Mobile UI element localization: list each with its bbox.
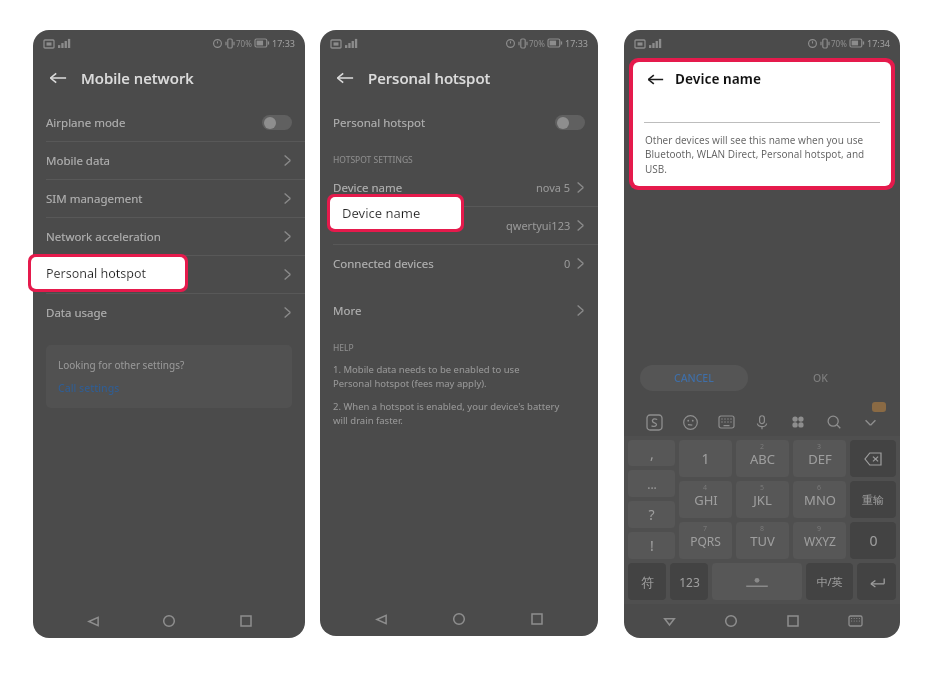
staticText: 5 (760, 483, 765, 493)
staticText: 符 (641, 574, 654, 590)
staticText: OK (813, 371, 828, 385)
button[interactable]: Personal hotspot (33, 256, 305, 293)
button[interactable]: 符 (628, 563, 666, 600)
button[interactable]: 7 (679, 522, 732, 559)
button[interactable]: Personal hotspot (31, 257, 185, 289)
button[interactable]: Recents (520, 602, 554, 636)
button[interactable]: Home (152, 604, 186, 638)
button[interactable]: Mobile data (33, 142, 305, 179)
staticText: 2. When a hotspot is enabled, your devic… (333, 400, 560, 427)
button[interactable]: ... (628, 470, 675, 497)
button[interactable]: Device name (330, 197, 461, 229)
button[interactable]: More tools (786, 410, 810, 434)
staticText: 17:34 (867, 37, 891, 49)
button[interactable]: Password (320, 207, 598, 244)
button[interactable]: , (628, 440, 675, 466)
button[interactable]: Recents (229, 604, 263, 638)
button[interactable]: 5 (736, 481, 789, 518)
staticText: Personal hotspot (368, 68, 491, 88)
button[interactable]: 重输 (850, 481, 896, 518)
button[interactable]: 6 (793, 481, 846, 518)
button[interactable]: Back (47, 67, 69, 89)
staticText: ! (650, 536, 654, 555)
staticText: WXYZ (804, 533, 836, 549)
button[interactable]: Keyboard (838, 604, 872, 638)
button[interactable]: Home (714, 604, 748, 638)
button[interactable]: 1 (679, 440, 732, 477)
staticText: Other devices will see this name when yo… (645, 133, 879, 176)
button[interactable]: Sogou (642, 410, 666, 434)
button[interactable]: Back (33, 56, 305, 100)
button[interactable]: Hide keyboard (858, 410, 882, 434)
button[interactable]: Space (712, 563, 802, 600)
staticText: 3 (817, 442, 822, 452)
staticText: HOTSPOT SETTINGS (333, 154, 413, 166)
staticText: 9 (817, 524, 822, 534)
staticText: Data usage (46, 305, 108, 321)
button[interactable]: Device name (320, 169, 598, 206)
staticText: HELP (333, 342, 354, 354)
button[interactable]: Enter (857, 563, 896, 600)
staticText: 4 (703, 483, 708, 493)
button[interactable]: 2 (736, 440, 789, 477)
staticText: 1. Mobile data needs to be enabled to us… (333, 363, 520, 390)
staticText: DEF (808, 450, 832, 468)
staticText: 70% (529, 38, 545, 49)
button[interactable]: Back (76, 604, 110, 638)
staticText: GHI (694, 491, 718, 509)
button[interactable]: 中/英 (806, 563, 853, 600)
button[interactable]: ! (628, 532, 675, 559)
button[interactable]: Search (822, 410, 846, 434)
staticText: Personal hotspot (333, 115, 426, 131)
staticText: Airplane mode (46, 115, 126, 131)
button[interactable]: Personal hotspot (320, 104, 598, 141)
button[interactable]: Keyboard layout (714, 410, 738, 434)
button[interactable]: 9 (793, 522, 846, 559)
staticText: Connected devices (333, 256, 434, 272)
staticText: Network acceleration (46, 229, 161, 245)
button[interactable]: Toggle (555, 115, 585, 130)
button[interactable]: Back (320, 56, 598, 100)
staticText: 中/英 (816, 574, 843, 589)
button[interactable]: More (320, 292, 598, 329)
button[interactable]: Back (334, 67, 356, 89)
button[interactable]: Toggle (262, 115, 292, 130)
staticText: Looking for other settings? (58, 358, 185, 372)
button[interactable]: Looking for other settings? (46, 345, 292, 408)
staticText: ... (647, 476, 657, 492)
staticText: , (650, 444, 654, 463)
button[interactable]: Delete (850, 440, 896, 477)
button[interactable]: SIM management (33, 180, 305, 217)
button[interactable]: Voice input (750, 410, 774, 434)
staticText: 123 (679, 574, 700, 590)
button[interactable]: Back (652, 604, 686, 638)
staticText: SIM management (46, 191, 143, 207)
staticText: 70% (831, 38, 847, 49)
button[interactable]: CANCEL (640, 365, 748, 391)
button[interactable]: Data usage (33, 294, 305, 331)
button[interactable]: Home (442, 602, 476, 636)
staticText: 7 (703, 524, 708, 534)
staticText: Personal hotspot (46, 265, 147, 282)
button[interactable]: 0 (850, 522, 896, 559)
button[interactable]: Back (364, 602, 398, 636)
staticText: 17:33 (272, 37, 296, 49)
button[interactable]: Airplane mode (33, 104, 305, 141)
staticText: MNO (804, 491, 836, 509)
button[interactable]: 123 (670, 563, 708, 600)
button[interactable]: ? (628, 501, 675, 528)
staticText: 17:33 (565, 37, 589, 49)
button[interactable]: Recents (776, 604, 810, 638)
button[interactable]: Network acceleration (33, 218, 305, 255)
button[interactable]: OK (790, 365, 850, 391)
staticText: 0 (564, 256, 571, 271)
button[interactable]: 4 (679, 481, 732, 518)
button[interactable]: 8 (736, 522, 789, 559)
staticText: Mobile network (81, 68, 194, 88)
button[interactable]: 3 (793, 440, 846, 477)
staticText: 2 (760, 442, 765, 452)
button[interactable]: Emoji (678, 410, 702, 434)
button[interactable]: Back (645, 69, 665, 89)
button[interactable]: Connected devices (320, 245, 598, 282)
staticText: 70% (236, 38, 252, 49)
